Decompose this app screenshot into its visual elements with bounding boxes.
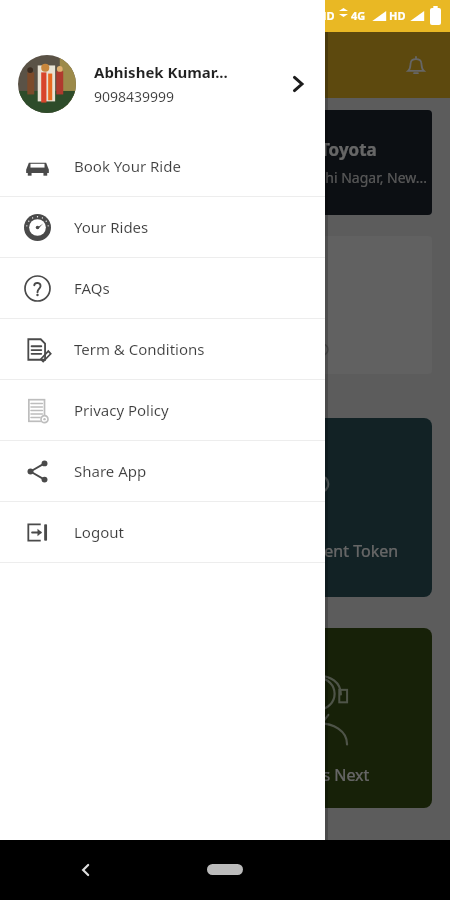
button[interactable]: Toyota xyxy=(150,110,432,215)
button[interactable]: Term & Conditions xyxy=(0,319,325,379)
button[interactable]: Who's Next xyxy=(150,628,432,808)
staticText: FAQs xyxy=(74,278,110,298)
staticText: HD xyxy=(389,8,406,23)
staticText: Abhishek Kumar... xyxy=(94,62,228,82)
button[interactable]: Book Your Ride xyxy=(0,136,325,196)
staticText: HD xyxy=(318,8,335,23)
staticText: 9098439999 xyxy=(94,87,175,106)
staticText: Toyota xyxy=(320,138,377,161)
button[interactable]: Appointment Token xyxy=(150,418,432,597)
button[interactable]: Abhishek Kumar... xyxy=(0,32,325,136)
staticText: Book Your Ride xyxy=(74,156,181,176)
button[interactable]: Back xyxy=(70,854,102,886)
button[interactable]: Share App xyxy=(0,441,325,501)
staticText: Privacy Policy xyxy=(74,400,169,420)
button[interactable]: FAQs xyxy=(0,258,325,318)
staticText: Appointment Token xyxy=(250,540,399,562)
button[interactable] xyxy=(150,236,432,374)
staticText: Who's Next xyxy=(285,764,370,786)
button[interactable] xyxy=(325,32,450,840)
button[interactable]: Notifications xyxy=(396,46,436,86)
button[interactable]: Home xyxy=(207,864,243,875)
button[interactable]: Privacy Policy xyxy=(0,380,325,440)
staticText: 4G xyxy=(351,8,366,23)
staticText: Gandhi Nagar, New... xyxy=(290,168,428,187)
button[interactable]: Your Rides xyxy=(0,197,325,257)
staticText: Your Rides xyxy=(74,217,149,237)
staticText: Term & Conditions xyxy=(74,339,205,359)
staticText: Logout xyxy=(74,522,124,542)
staticText: Share App xyxy=(74,461,147,481)
button[interactable]: Logout xyxy=(0,502,325,562)
